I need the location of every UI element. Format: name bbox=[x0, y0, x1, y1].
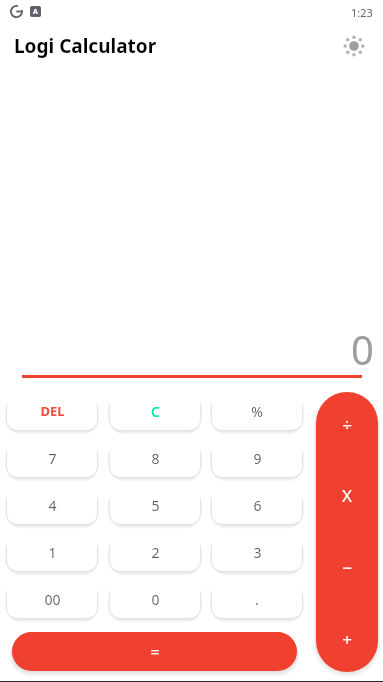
button[interactable]: 0 bbox=[110, 580, 200, 618]
button[interactable]: . bbox=[212, 580, 302, 618]
staticText: 0 bbox=[151, 590, 160, 609]
staticText: Logi Calculator bbox=[14, 33, 157, 59]
staticText: 7 bbox=[48, 449, 57, 468]
button[interactable]: 2 bbox=[110, 533, 200, 571]
button[interactable]: Divide bbox=[316, 409, 378, 440]
staticText: = bbox=[150, 641, 160, 663]
staticText: A bbox=[33, 7, 38, 17]
button[interactable]: 5 bbox=[110, 486, 200, 524]
staticText: 5 bbox=[151, 496, 160, 515]
button[interactable]: 7 bbox=[7, 439, 97, 477]
button[interactable]: 1 bbox=[7, 533, 97, 571]
staticText: − bbox=[342, 556, 352, 579]
staticText: 3 bbox=[253, 543, 262, 562]
staticText: X bbox=[342, 484, 352, 507]
button[interactable]: 6 bbox=[212, 486, 302, 524]
staticText: . bbox=[255, 590, 259, 609]
staticText: ÷ bbox=[342, 413, 352, 436]
staticText: 9 bbox=[253, 449, 262, 468]
staticText: 6 bbox=[253, 496, 262, 515]
button[interactable]: 00 bbox=[7, 580, 97, 618]
button[interactable]: 8 bbox=[110, 439, 200, 477]
staticText: + bbox=[342, 628, 352, 651]
staticText: 0 bbox=[0, 322, 374, 376]
button[interactable]: DEL bbox=[7, 392, 97, 430]
staticText: 1:23 bbox=[351, 5, 373, 20]
staticText: 1 bbox=[48, 543, 57, 562]
button[interactable]: = bbox=[12, 632, 297, 671]
button[interactable]: 3 bbox=[212, 533, 302, 571]
button[interactable]: % bbox=[212, 392, 302, 430]
button[interactable]: Multiply bbox=[316, 480, 378, 511]
staticText: 2 bbox=[151, 543, 160, 562]
staticText: % bbox=[251, 402, 263, 421]
button[interactable]: C bbox=[110, 392, 200, 430]
button[interactable]: 4 bbox=[7, 486, 97, 524]
button[interactable]: 9 bbox=[212, 439, 302, 477]
staticText: 00 bbox=[44, 590, 61, 609]
button[interactable]: Subtract bbox=[316, 552, 378, 583]
staticText: C bbox=[151, 402, 160, 421]
button[interactable]: Toggle theme brightness bbox=[339, 31, 369, 61]
staticText: DEL bbox=[40, 402, 65, 420]
button[interactable]: Add bbox=[316, 624, 378, 655]
staticText: 8 bbox=[151, 449, 160, 468]
staticText: 4 bbox=[48, 496, 57, 515]
